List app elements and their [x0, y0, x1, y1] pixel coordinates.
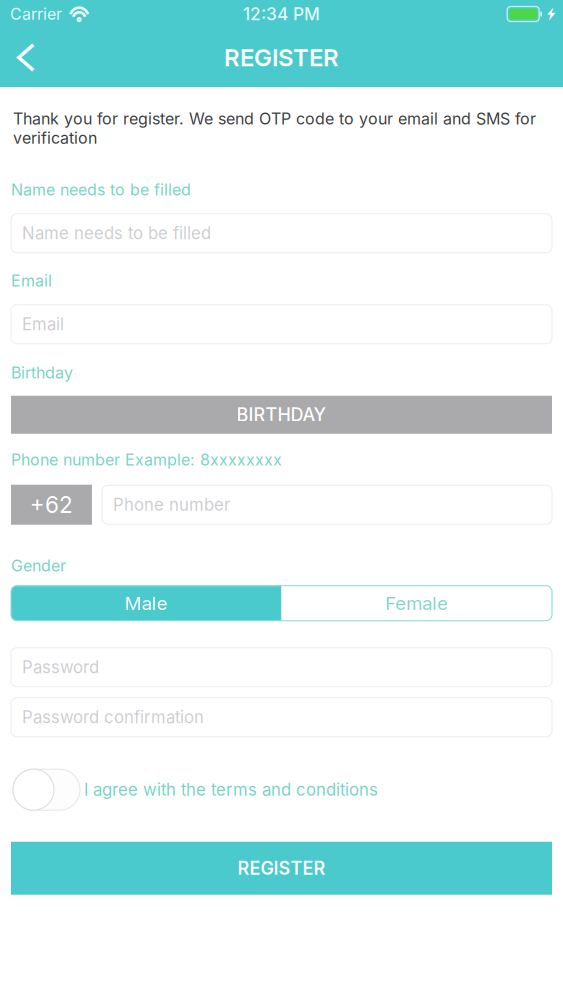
staticText: Email: [11, 271, 52, 290]
staticText: Carrier: [10, 4, 62, 24]
staticText: Name needs to be filled: [11, 180, 191, 199]
staticText: I agree with the terms and conditions: [84, 780, 378, 800]
staticText: Male: [125, 592, 168, 614]
staticText: Password: [22, 657, 99, 677]
button[interactable]: BIRTHDAY: [11, 396, 552, 434]
staticText: Female: [385, 592, 448, 614]
staticText: Phone number Example: 8xxxxxxxx: [11, 450, 282, 469]
button[interactable]: REGISTER: [11, 842, 552, 895]
staticText: Password confirmation: [22, 707, 204, 727]
staticText: 12:34 PM: [243, 3, 320, 24]
staticText: REGISTER: [237, 857, 325, 879]
staticText: Email: [22, 314, 64, 334]
button[interactable]: Back: [0, 28, 53, 87]
staticText: Phone number: [113, 495, 230, 515]
button[interactable]: Male: [11, 586, 281, 621]
staticText: +62: [30, 491, 73, 518]
staticText: Name needs to be filled: [22, 223, 211, 243]
staticText: Gender: [11, 556, 66, 575]
button[interactable]: Female: [281, 586, 552, 621]
button[interactable]: I agree with the terms and conditions: [13, 769, 80, 811]
staticText: Birthday: [11, 363, 73, 382]
staticText: Thank you for register. We send OTP code…: [13, 109, 536, 148]
staticText: REGISTER: [224, 43, 339, 72]
staticText: BIRTHDAY: [236, 404, 326, 426]
